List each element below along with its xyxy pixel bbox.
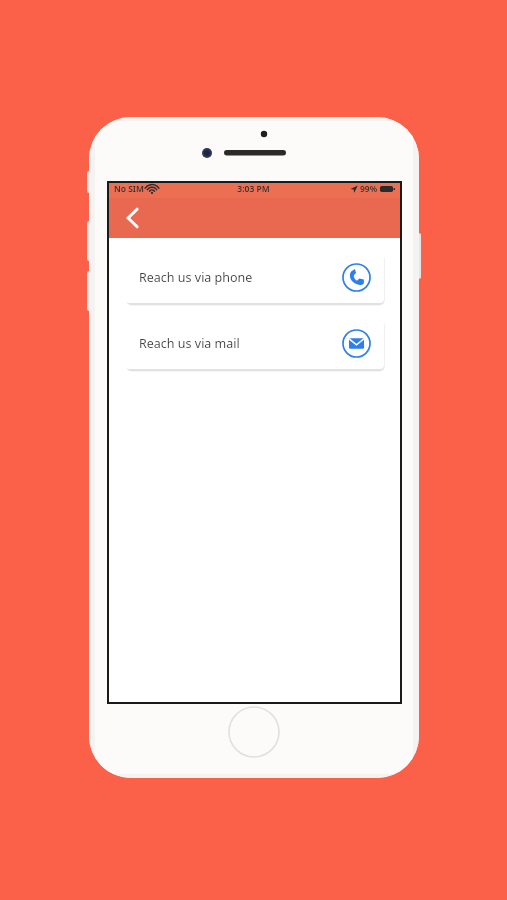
button[interactable]: Reach us via mail (125, 317, 384, 369)
staticText: Reach us via mail (139, 335, 240, 352)
staticText: 3:03 PM (237, 183, 270, 195)
staticText: Reach us via phone (139, 269, 253, 286)
staticText: 99% (360, 183, 378, 195)
other: Call us (342, 263, 371, 292)
staticText: No SIM (114, 183, 144, 195)
other: Email us (342, 329, 371, 358)
button[interactable]: Back (117, 203, 147, 233)
button[interactable]: Reach us via phone (125, 251, 384, 303)
